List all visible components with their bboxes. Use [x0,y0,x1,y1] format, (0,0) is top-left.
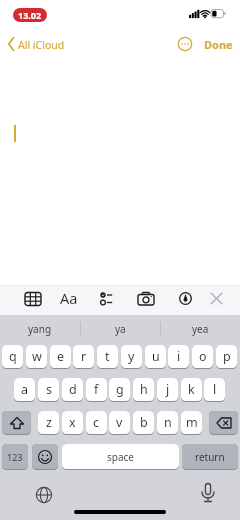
button[interactable]: All iCloud [5,35,69,53]
button[interactable]: b [133,411,154,434]
button[interactable]: d [62,378,83,401]
staticText: p [223,348,231,365]
staticText: c [93,414,100,431]
button[interactable]: e [50,345,71,368]
button[interactable]: h [133,378,154,401]
staticText: ya [115,322,126,336]
button[interactable]: v [109,411,130,434]
button[interactable] [2,411,31,434]
staticText: u [152,348,160,365]
button[interactable]: o [192,345,213,368]
button[interactable]: l [204,378,225,401]
button[interactable]: m [181,411,202,434]
staticText: Done [204,37,233,52]
staticText: m [186,414,198,431]
staticText: l [213,381,217,398]
button[interactable] [198,482,218,506]
staticText: e [57,348,65,365]
button[interactable]: f [86,378,107,401]
button[interactable]: Done [202,35,234,53]
button[interactable]: space [62,444,179,469]
staticText: k [188,381,195,398]
button[interactable]: t [97,345,118,368]
staticText: b [140,414,148,431]
button[interactable] [177,36,193,52]
staticText: v [116,414,123,431]
button[interactable] [209,411,238,434]
button[interactable]: g [109,378,130,401]
button[interactable] [137,290,157,307]
staticText: yang [28,322,52,336]
button[interactable] [210,292,223,305]
staticText: t [105,348,110,365]
staticText: w [32,348,42,365]
button[interactable]: c [86,411,107,434]
staticText: 123 [7,451,23,463]
staticText: r [81,348,87,365]
staticText: y [128,348,135,365]
staticText: s [46,381,52,398]
staticText: q [9,348,17,365]
staticText: 13.02 [18,9,42,21]
button[interactable]: i [168,345,189,368]
staticText: yea [192,322,209,336]
staticText: g [116,381,124,398]
button[interactable]: ya [80,316,160,342]
button[interactable]: 123 [2,444,28,469]
button[interactable]: n [157,411,178,434]
staticText: a [21,381,29,398]
staticText: return [195,450,225,464]
button[interactable]: j [157,378,178,401]
button[interactable]: r [73,345,94,368]
staticText: i [177,348,181,365]
button[interactable]: Aa [58,288,80,308]
button[interactable]: s [38,378,59,401]
button[interactable] [97,290,115,307]
staticText: Aa [60,288,78,308]
button[interactable]: a [14,378,35,401]
staticText: All iCloud [18,38,65,52]
button[interactable] [32,444,58,469]
staticText: d [69,381,77,398]
staticText: z [46,414,52,431]
button[interactable]: x [62,411,83,434]
staticText: space [107,450,134,464]
button[interactable]: q [2,345,23,368]
button[interactable]: z [38,411,59,434]
button[interactable]: y [121,345,142,368]
button[interactable]: yea [160,316,240,342]
button[interactable]: k [181,378,202,401]
staticText: j [166,381,170,398]
button[interactable]: u [145,345,166,368]
staticText: o [199,348,207,365]
button[interactable]: p [216,345,237,368]
button[interactable] [33,484,55,506]
button[interactable]: yang [0,316,80,342]
button[interactable] [24,290,42,307]
button[interactable] [179,292,192,305]
staticText: n [164,414,172,431]
button[interactable]: return [182,444,238,469]
staticText: h [140,381,148,398]
staticText: f [94,381,99,398]
button[interactable]: w [26,345,47,368]
staticText: x [69,414,76,431]
